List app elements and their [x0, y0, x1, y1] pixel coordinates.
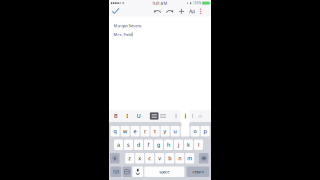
button[interactable]: Title style	[160, 110, 166, 122]
staticText: r	[144, 128, 146, 135]
staticText: l	[198, 141, 199, 148]
staticText: m	[187, 155, 192, 162]
button[interactable]: h	[164, 139, 173, 150]
staticText: j	[178, 141, 179, 148]
button[interactable]: n	[175, 153, 184, 163]
button[interactable]: v	[155, 153, 164, 163]
staticText: Mrs. Field	[114, 32, 132, 37]
staticText: o	[194, 128, 197, 135]
staticText: 123	[113, 169, 119, 174]
staticText: d	[137, 141, 140, 148]
staticText: s	[127, 141, 130, 148]
staticText: return	[192, 169, 203, 174]
staticText: 100%	[193, 1, 201, 5]
button[interactable]: Text format	[188, 6, 196, 16]
button[interactable]: Body style	[150, 110, 158, 122]
staticText: n	[178, 155, 181, 162]
button[interactable]: e	[131, 126, 140, 136]
button[interactable]: s	[124, 139, 133, 150]
staticText: f	[147, 141, 149, 148]
button[interactable]: Indent	[174, 110, 178, 122]
staticText: k	[187, 141, 190, 148]
button[interactable]: t	[151, 126, 160, 136]
button[interactable]: Shift	[110, 153, 120, 163]
button[interactable]: w	[121, 126, 130, 136]
staticText: space	[159, 169, 169, 174]
staticText: a	[117, 141, 120, 148]
staticText: h	[167, 141, 170, 148]
button[interactable]: q	[111, 126, 120, 136]
staticText: z	[128, 155, 131, 162]
staticText: Morgan Stevens	[114, 23, 142, 28]
staticText: q	[114, 128, 117, 135]
button[interactable]: Delete	[199, 153, 208, 163]
staticText: Aa	[189, 8, 195, 15]
button[interactable]: b	[165, 153, 174, 163]
staticText: i	[184, 112, 186, 120]
button[interactable]: Undo	[153, 6, 161, 16]
button[interactable]: Add	[178, 6, 186, 16]
button[interactable]: k	[184, 139, 193, 150]
button[interactable]: space	[144, 166, 184, 177]
button[interactable]: 123	[110, 166, 121, 177]
button[interactable]: I	[123, 110, 132, 122]
staticText: I	[126, 112, 128, 120]
staticText: B	[114, 112, 117, 120]
button[interactable]: c	[145, 153, 154, 163]
button[interactable]: a	[114, 139, 123, 150]
button[interactable]: B	[111, 110, 120, 122]
staticText: c	[148, 155, 151, 162]
staticText: U	[137, 112, 141, 120]
button[interactable]: g	[154, 139, 163, 150]
button[interactable]: p	[201, 126, 210, 136]
button[interactable]: return	[186, 166, 209, 177]
staticText: u	[174, 128, 177, 135]
button[interactable]: o	[191, 126, 200, 136]
button[interactable]: Done	[111, 6, 120, 16]
button[interactable]: x	[135, 153, 144, 163]
button[interactable]: z	[125, 153, 134, 163]
button[interactable]: m	[185, 153, 194, 163]
staticText: b	[168, 155, 171, 162]
staticText: g	[157, 141, 160, 148]
staticText: y	[164, 128, 167, 135]
staticText: t	[154, 128, 156, 135]
button[interactable]: More	[198, 6, 204, 16]
button[interactable]: l	[194, 139, 203, 150]
button[interactable]: i	[181, 126, 190, 136]
button[interactable]: j	[174, 139, 183, 150]
button[interactable]: y	[161, 126, 170, 136]
staticText: p	[204, 128, 207, 135]
button[interactable]: Redo	[166, 6, 174, 16]
button[interactable]: u	[171, 126, 180, 136]
staticText: aA	[198, 113, 203, 119]
button[interactable]: Emoji	[123, 166, 131, 177]
button[interactable]: Dictation	[132, 166, 143, 177]
button[interactable]: d	[134, 139, 143, 150]
button[interactable]: Outdent	[191, 110, 194, 122]
button[interactable]: Font size	[196, 110, 205, 122]
button[interactable]: f	[144, 139, 153, 150]
staticText: v	[158, 155, 161, 162]
staticText: x	[138, 155, 141, 162]
staticText: e	[134, 128, 137, 135]
staticText: w	[123, 128, 127, 135]
button[interactable]: U	[134, 110, 143, 122]
staticText: 9:41 AM	[152, 0, 167, 6]
button[interactable]: r	[141, 126, 150, 136]
